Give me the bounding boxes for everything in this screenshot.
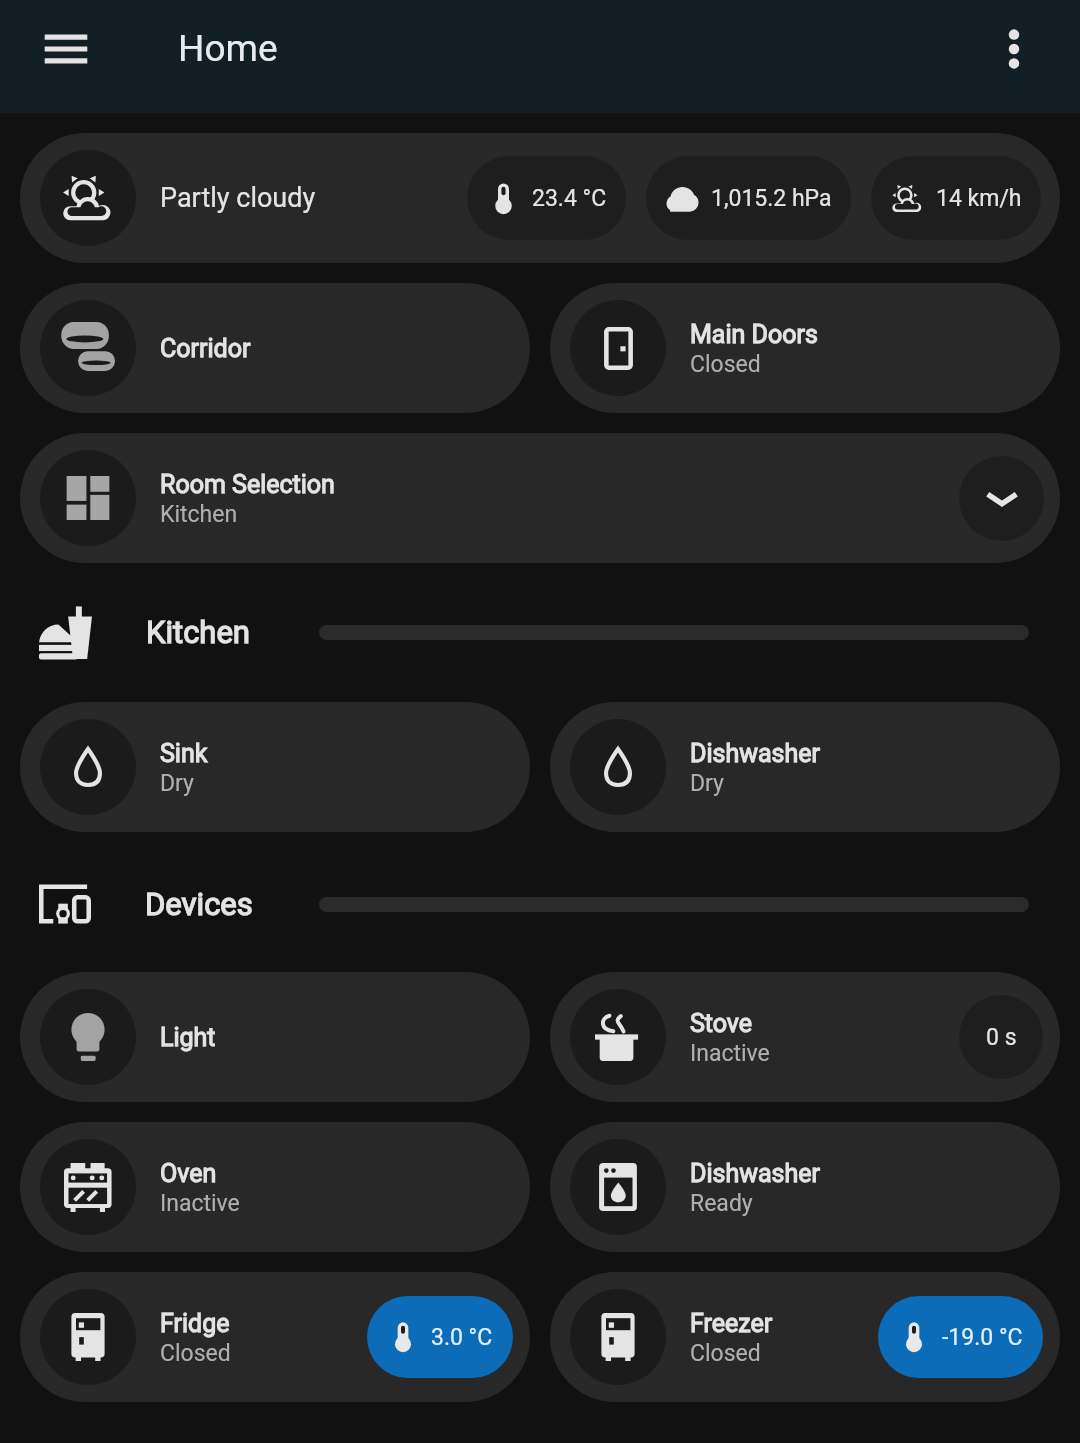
staticText: Room Selection — [160, 470, 335, 499]
button[interactable]: 3.0 °C — [367, 1296, 513, 1378]
button[interactable]: Dishwasher — [550, 702, 1060, 832]
button[interactable]: 0 s — [959, 995, 1043, 1079]
staticText: 3.0 °C — [431, 1324, 493, 1351]
staticText: Stove — [690, 1009, 753, 1038]
button[interactable]: Light — [20, 972, 530, 1102]
button[interactable]: Dishwasher — [550, 1122, 1060, 1252]
staticText: Dry — [160, 770, 194, 797]
button[interactable]: Main Doors — [550, 283, 1060, 413]
button[interactable]: Expand room selection — [959, 456, 1044, 541]
button[interactable]: Freezer — [550, 1272, 1060, 1402]
staticText: Dishwasher — [690, 739, 820, 768]
button[interactable]: Corridor — [20, 283, 530, 413]
staticText: Main Doors — [690, 320, 818, 349]
staticText: Dishwasher — [690, 1159, 820, 1188]
staticText: 23.4 °C — [532, 185, 607, 212]
staticText: Oven — [160, 1159, 217, 1188]
button[interactable]: Stove — [550, 972, 1060, 1102]
staticText: Closed — [160, 1340, 231, 1367]
button[interactable]: Partly cloudy — [20, 133, 1060, 263]
staticText: Fridge — [160, 1309, 230, 1338]
staticText: Freezer — [690, 1309, 773, 1338]
button[interactable]: Oven — [20, 1122, 530, 1252]
staticText: 0 s — [986, 1024, 1017, 1051]
staticText: Home — [178, 27, 278, 70]
staticText: Corridor — [160, 334, 251, 363]
button[interactable]: Fridge — [20, 1272, 530, 1402]
staticText: Sink — [160, 739, 208, 768]
staticText: Kitchen — [160, 501, 238, 528]
staticText: Dry — [690, 770, 724, 797]
button[interactable]: 23.4 °C — [467, 156, 626, 240]
staticText: 1,015.2 hPa — [711, 185, 832, 212]
button[interactable]: 14 km/h — [871, 156, 1041, 240]
staticText: Devices — [145, 886, 253, 922]
staticText: Inactive — [690, 1040, 770, 1067]
staticText: Closed — [690, 351, 761, 378]
button[interactable]: -19.0 °C — [878, 1296, 1043, 1378]
button[interactable]: Sink — [20, 702, 530, 832]
button[interactable]: More options — [982, 17, 1046, 81]
staticText: -19.0 °C — [942, 1324, 1023, 1351]
staticText: Kitchen — [146, 614, 250, 650]
staticText: Closed — [690, 1340, 761, 1367]
button[interactable]: Room Selection — [20, 433, 1060, 563]
staticText: Inactive — [160, 1190, 240, 1217]
staticText: Partly cloudy — [160, 182, 316, 214]
staticText: 14 km/h — [936, 185, 1022, 212]
button[interactable]: Open navigation menu — [34, 17, 98, 81]
staticText: Ready — [690, 1190, 753, 1217]
staticText: Light — [160, 1023, 216, 1052]
button[interactable]: 1,015.2 hPa — [646, 156, 851, 240]
